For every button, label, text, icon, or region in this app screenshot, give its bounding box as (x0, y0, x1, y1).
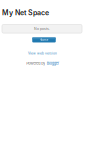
staticText: No posts. (34, 27, 50, 31)
button[interactable]: Powered by (0, 61, 85, 66)
staticText: Blogger (47, 61, 59, 66)
button[interactable]: Home (32, 37, 56, 42)
staticText: Home (39, 38, 48, 42)
staticText: Powered by (26, 61, 45, 66)
staticText: View web version (28, 51, 57, 55)
button[interactable]: View web version (0, 51, 85, 55)
staticText: My Net Space (2, 8, 49, 17)
